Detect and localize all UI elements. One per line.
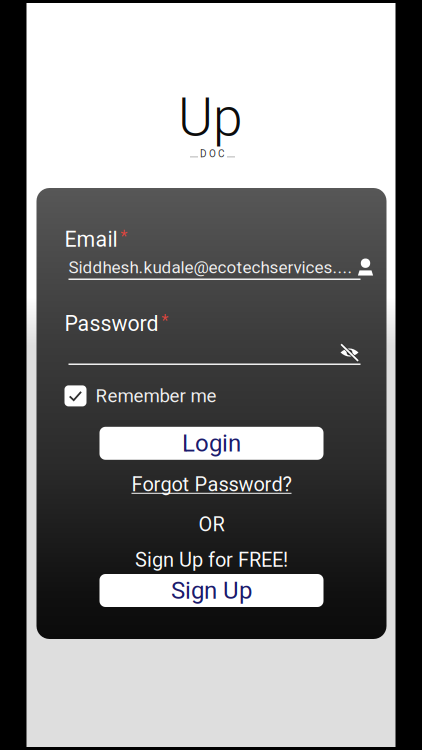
staticText: Password (64, 311, 158, 336)
staticText: Sign Up for FREE! (135, 548, 288, 572)
staticText: Up (178, 86, 243, 148)
staticText: DOC (200, 148, 225, 160)
staticText: Remember me (95, 385, 216, 407)
staticText: * (120, 227, 127, 246)
staticText: * (161, 311, 168, 330)
staticText: Email (64, 227, 117, 252)
staticText: Forgot Password? (131, 473, 291, 496)
staticText: OR (198, 513, 224, 536)
button[interactable]: Remember me (64, 385, 216, 406)
button[interactable]: Forgot Password? (131, 474, 291, 495)
button[interactable]: Sign Up (99, 574, 323, 607)
staticText: Siddhesh.kudale@ecotechservices.... (68, 257, 352, 277)
staticText: Sign Up (171, 576, 252, 604)
button[interactable]: Login (99, 427, 323, 460)
staticText: Login (182, 429, 241, 457)
